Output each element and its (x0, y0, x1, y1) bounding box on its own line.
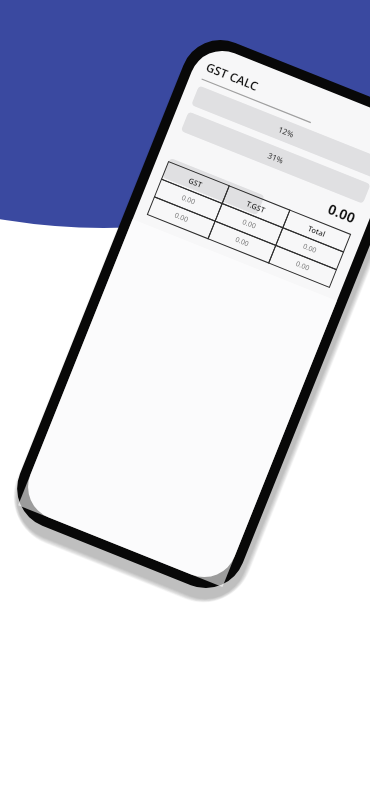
button[interactable]: GST calculator app promo (0, 0, 370, 800)
